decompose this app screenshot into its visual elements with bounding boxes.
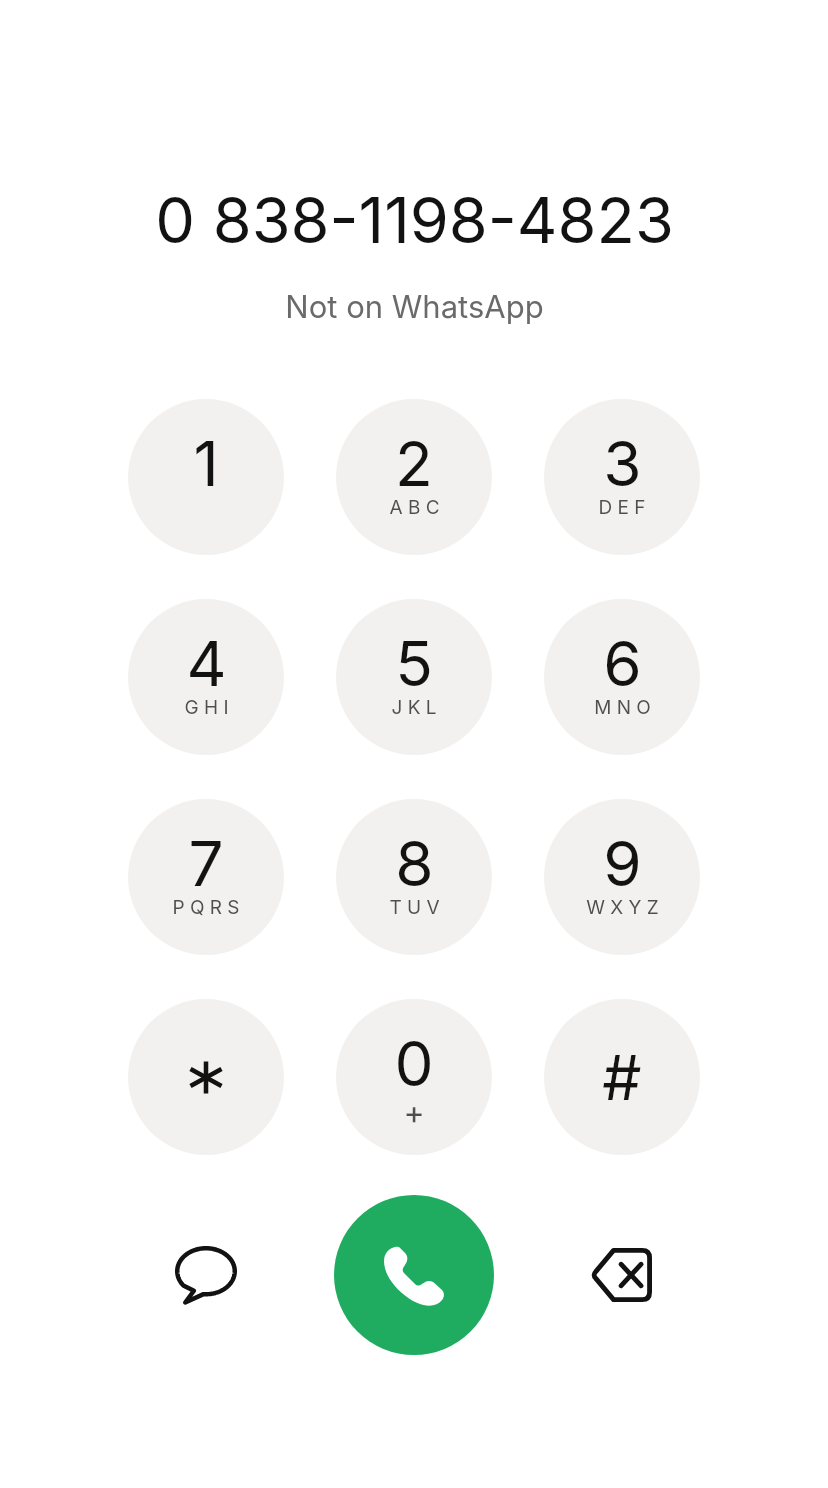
staticText: W X Y Z	[586, 896, 659, 919]
staticText: 0 838-1198-4823	[155, 182, 674, 258]
staticText: 5	[395, 626, 433, 701]
button[interactable]: 8	[336, 799, 492, 955]
staticText: 2	[395, 426, 433, 501]
staticText: Not on WhatsApp	[285, 288, 544, 326]
staticText: P Q R S	[172, 896, 240, 919]
button[interactable]	[128, 999, 284, 1155]
button[interactable]: 2	[336, 399, 492, 555]
staticText: D E F	[598, 496, 646, 519]
staticText: M N O	[594, 696, 651, 719]
staticText: 4	[186, 626, 227, 701]
button[interactable]: Backspace	[544, 1197, 700, 1353]
staticText: 6	[603, 626, 642, 701]
staticText: A B C	[389, 496, 440, 519]
staticText: 8	[395, 826, 434, 901]
button[interactable]: #	[544, 999, 700, 1155]
button[interactable]: Call	[334, 1195, 494, 1355]
staticText: T U V	[389, 896, 440, 919]
staticText: +	[403, 1093, 425, 1132]
staticText: #	[602, 1040, 642, 1115]
button[interactable]: 3	[544, 399, 700, 555]
staticText: 9	[603, 826, 642, 901]
button[interactable]: 6	[544, 599, 700, 755]
staticText: 1	[193, 426, 219, 501]
button[interactable]: 7	[128, 799, 284, 955]
button[interactable]: 0	[336, 999, 492, 1155]
button[interactable]: 5	[336, 599, 492, 755]
button[interactable]: 4	[128, 599, 284, 755]
button[interactable]: 1	[128, 399, 284, 555]
staticText: 0	[394, 1026, 434, 1101]
staticText: 3	[603, 426, 642, 501]
staticText: J K L	[391, 696, 437, 719]
button[interactable]: Send message	[128, 1197, 284, 1353]
staticText: G H I	[184, 696, 229, 719]
staticText: 7	[188, 826, 224, 901]
button[interactable]: 9	[544, 799, 700, 955]
